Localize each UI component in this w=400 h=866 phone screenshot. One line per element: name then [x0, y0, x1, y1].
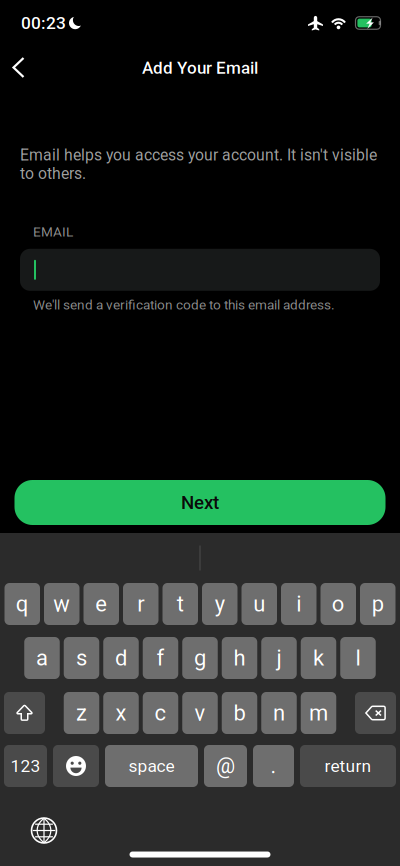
button[interactable]: Emoji [53, 745, 99, 787]
staticText: q [16, 591, 29, 617]
button[interactable]: m [301, 692, 336, 734]
staticText: We'll send a verification code to this e… [33, 297, 335, 313]
button[interactable]: f [143, 637, 178, 679]
staticText: Email helps you access your account. It … [20, 146, 377, 183]
staticText: t [177, 591, 184, 617]
button[interactable]: u [241, 583, 277, 625]
button[interactable]: v [182, 692, 218, 734]
button[interactable]: i [281, 583, 316, 625]
button[interactable]: @ [204, 745, 247, 787]
button[interactable]: y [202, 583, 237, 625]
staticText: k [313, 645, 324, 671]
button[interactable]: x [103, 692, 139, 734]
staticText: . [270, 753, 276, 778]
button[interactable]: o [320, 583, 356, 625]
staticText: h [233, 645, 245, 671]
staticText: 00:23 [21, 13, 66, 33]
button[interactable]: d [103, 637, 139, 679]
staticText: l [355, 645, 360, 671]
button[interactable]: e [83, 583, 119, 625]
staticText: EMAIL [33, 224, 73, 240]
staticText: 123 [10, 756, 40, 776]
staticText: g [194, 645, 206, 671]
staticText: j [276, 645, 281, 671]
button[interactable]: k [301, 637, 336, 679]
button[interactable]: g [182, 637, 218, 679]
staticText: f [156, 645, 164, 671]
staticText: u [253, 591, 265, 617]
button[interactable]: j [261, 637, 297, 679]
button[interactable]: return [300, 745, 396, 787]
staticText: d [115, 645, 127, 671]
button[interactable]: t [162, 583, 198, 625]
staticText: s [76, 645, 87, 671]
button[interactable]: b [222, 692, 257, 734]
staticText: e [95, 591, 107, 617]
staticText: c [154, 700, 166, 726]
staticText: space [128, 756, 174, 776]
staticText: @ [216, 753, 235, 778]
staticText: Next [181, 492, 219, 513]
staticText: p [372, 591, 384, 617]
button[interactable]: r [123, 583, 158, 625]
button[interactable]: Next [14, 480, 385, 525]
staticText: v [194, 700, 205, 726]
staticText: w [53, 591, 70, 617]
button[interactable]: c [143, 692, 178, 734]
staticText: o [332, 591, 345, 617]
staticText: i [296, 591, 301, 617]
button[interactable]: Back [0, 46, 41, 90]
staticText: m [309, 700, 328, 726]
staticText: z [76, 700, 87, 726]
button[interactable]: 123 [4, 745, 47, 787]
button[interactable]: p [360, 583, 395, 625]
button[interactable]: Shift [4, 692, 45, 734]
button[interactable]: w [44, 583, 79, 625]
button[interactable]: l [340, 637, 376, 679]
button[interactable]: s [64, 637, 99, 679]
button[interactable]: n [261, 692, 297, 734]
button[interactable]: space [105, 745, 198, 787]
staticText: x [115, 700, 126, 726]
button[interactable]: h [222, 637, 257, 679]
button[interactable]: z [64, 692, 99, 734]
staticText: return [324, 756, 371, 776]
staticText: Add Your Email [142, 58, 258, 78]
staticText: y [215, 591, 225, 617]
button[interactable]: a [24, 637, 60, 679]
staticText: r [137, 591, 144, 617]
staticText: n [273, 700, 285, 726]
button[interactable]: Next keyboard [0, 795, 57, 843]
staticText: a [36, 645, 48, 671]
button[interactable]: q [4, 583, 40, 625]
button[interactable]: Delete [355, 692, 396, 734]
button[interactable]: . [253, 745, 294, 787]
staticText: b [233, 700, 245, 726]
